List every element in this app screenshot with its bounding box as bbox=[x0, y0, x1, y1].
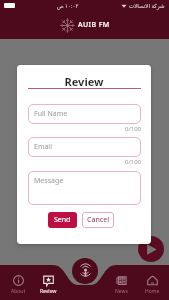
button[interactable]: Review bbox=[34, 272, 62, 298]
button[interactable]: Message bbox=[28, 171, 141, 205]
staticText: 0/100 bbox=[28, 125, 141, 133]
staticText: Cancel bbox=[87, 215, 110, 225]
button[interactable]: Play bbox=[138, 236, 164, 262]
button[interactable]: Full Name bbox=[28, 104, 141, 124]
button[interactable]: Send bbox=[48, 212, 77, 228]
button[interactable]: About bbox=[4, 272, 32, 298]
staticText: About bbox=[11, 288, 26, 295]
staticText: ١٠:٠٢ ص bbox=[57, 2, 79, 9]
button[interactable]: Cancel bbox=[82, 212, 114, 228]
button[interactable]: Home bbox=[138, 272, 166, 298]
staticText: Review bbox=[17, 74, 151, 89]
button[interactable]: Email bbox=[28, 137, 141, 157]
staticText: Email bbox=[34, 142, 52, 152]
button[interactable]: News bbox=[107, 272, 135, 298]
staticText: Home bbox=[145, 288, 160, 295]
staticText: AUIB FM bbox=[78, 20, 110, 30]
staticText: Message bbox=[34, 176, 64, 186]
staticText: شركة الاتصالات bbox=[129, 2, 165, 9]
staticText: News bbox=[115, 288, 128, 295]
staticText: Full Name bbox=[34, 109, 68, 119]
staticText: Send bbox=[54, 215, 71, 225]
button[interactable]: Radio bbox=[72, 258, 98, 284]
staticText: 0/100 bbox=[28, 158, 141, 166]
staticText: Review bbox=[40, 288, 57, 295]
